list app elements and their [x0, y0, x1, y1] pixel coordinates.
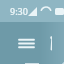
button[interactable]: Search: [50, 29, 52, 57]
button[interactable]: Menu: [12, 29, 40, 57]
staticText: 9:30: [10, 5, 28, 17]
